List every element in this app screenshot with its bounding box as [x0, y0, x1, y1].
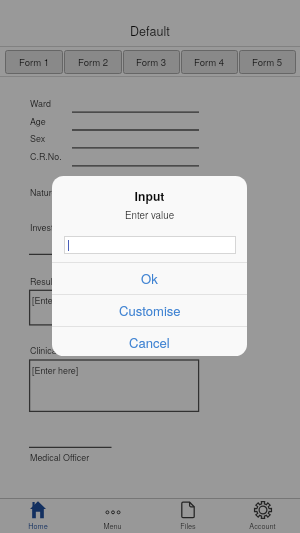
staticText: [Enter here]	[32, 294, 79, 307]
button[interactable]: Ok	[52, 263, 247, 294]
staticText: Customise	[119, 301, 181, 320]
button[interactable]: Cancel	[52, 327, 247, 356]
button[interactable]: Form 5	[239, 50, 296, 74]
button[interactable]: Form 4	[181, 50, 238, 74]
button[interactable]: Files	[150, 498, 225, 533]
staticText: Result	[30, 275, 56, 288]
staticText: Form 4	[194, 55, 225, 69]
other: Account	[254, 501, 272, 519]
staticText: Ok	[141, 269, 158, 288]
staticText: Age	[30, 115, 46, 128]
staticText: Account	[249, 521, 276, 531]
other: Files	[180, 501, 196, 519]
staticText: Ward	[30, 97, 51, 110]
staticText: Clinical Notes	[30, 344, 85, 357]
button[interactable]	[64, 236, 236, 254]
staticText: C.R.No.	[30, 150, 62, 163]
other: Home	[30, 501, 46, 519]
staticText: Form 3	[136, 55, 167, 69]
staticText: Home	[28, 521, 48, 531]
staticText: Investigations	[30, 221, 84, 234]
button[interactable]: Default	[0, 15, 300, 47]
button[interactable]: Customise	[52, 295, 247, 326]
button[interactable]: Menu	[75, 498, 150, 533]
staticText: Menu	[103, 521, 122, 531]
staticText: [Enter here]	[32, 364, 79, 377]
staticText: Medical Officer	[30, 451, 90, 464]
staticText: Sex	[30, 132, 46, 145]
staticText: Form 2	[78, 55, 109, 69]
staticText: Form 5	[252, 55, 283, 69]
button[interactable]: Home	[0, 498, 75, 533]
staticText: Files	[180, 521, 196, 531]
staticText: Input	[52, 187, 247, 204]
button[interactable]: Form 2	[64, 50, 122, 74]
button[interactable]: Form 3	[123, 50, 180, 74]
button[interactable]: Account	[225, 498, 300, 533]
other: Menu	[105, 501, 121, 519]
button[interactable]: Form 1	[5, 50, 63, 74]
staticText: Default	[130, 22, 170, 40]
staticText: Nature	[30, 186, 57, 199]
staticText: Enter value	[52, 208, 247, 222]
staticText: Cancel	[129, 333, 170, 352]
staticText: Form 1	[19, 55, 50, 69]
